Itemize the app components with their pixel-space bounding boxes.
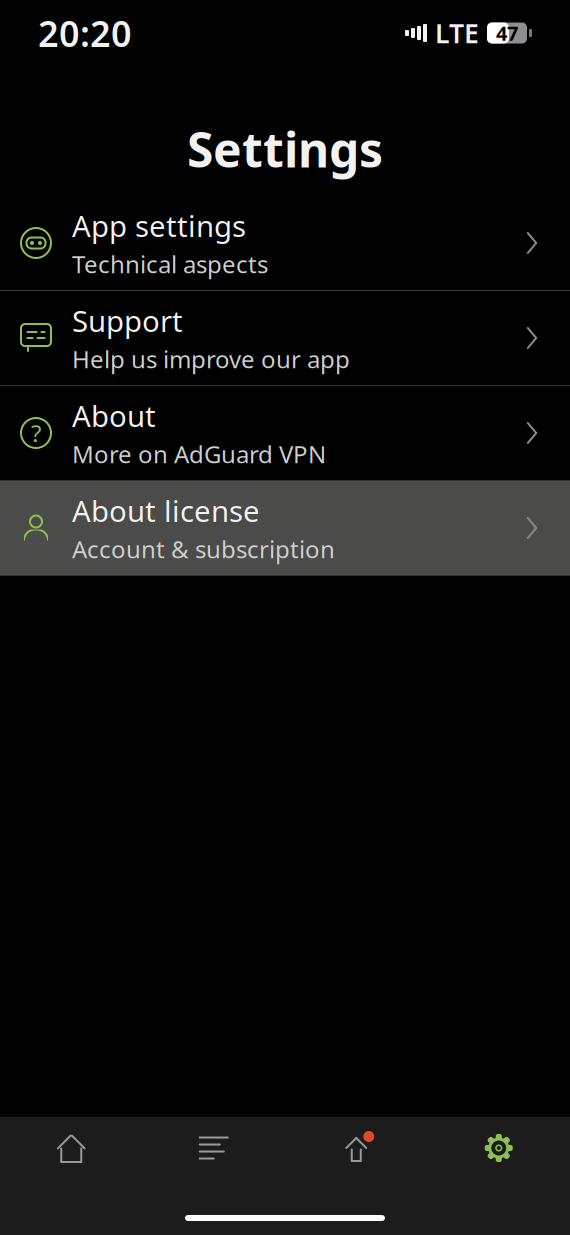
staticText: ?: [31, 417, 41, 449]
staticText: About: [72, 396, 156, 435]
staticText: About license: [72, 491, 260, 530]
staticText: LTE: [435, 15, 479, 51]
button[interactable]: ?: [0, 386, 570, 481]
button[interactable]: Settings: [427, 1117, 570, 1179]
staticText: 20:20: [38, 9, 132, 57]
staticText: Settings: [187, 117, 383, 181]
button[interactable]: Exclusions: [142, 1117, 285, 1179]
button[interactable]: Support: [0, 291, 570, 386]
button[interactable]: Home: [0, 1117, 142, 1179]
staticText: 47: [496, 20, 518, 46]
staticText: App settings: [72, 206, 246, 245]
staticText: Support: [72, 301, 183, 340]
staticText: More on AdGuard VPN: [72, 438, 326, 470]
staticText: Technical aspects: [72, 248, 268, 280]
staticText: Help us improve our app: [72, 343, 350, 375]
staticText: Account & subscription: [72, 533, 335, 565]
button[interactable]: About license: [0, 481, 570, 576]
button[interactable]: Updates: [285, 1117, 427, 1179]
button[interactable]: App settings: [0, 196, 570, 291]
